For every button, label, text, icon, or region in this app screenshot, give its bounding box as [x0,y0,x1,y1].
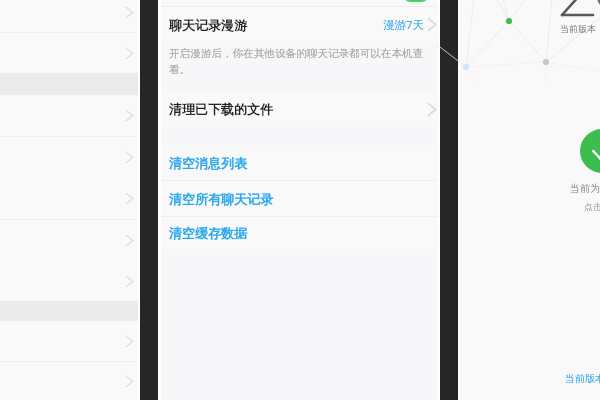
button[interactable]: 清空消息列表 [161,145,438,180]
button[interactable]: 聊天记录漫游 [161,7,438,42]
staticText: 清空消息列表 [169,155,247,171]
staticText: 聊天记录漫游 [169,17,247,33]
button[interactable]: 清理已下载的文件 [161,91,438,127]
staticText: 清空缓存数据 [169,225,247,241]
staticText: 点击检查更新 [584,201,600,212]
button[interactable]: 当前版本号 [565,372,600,385]
staticText: 开启漫游后，你在其他设备的聊天记录都可以在本机查看。 [169,47,436,76]
staticText: 当前为最新版本 [570,182,600,195]
button[interactable]: 清空所有聊天记录 [161,181,438,216]
button[interactable]: 清空缓存数据 [161,217,438,249]
staticText: 漫游7天 [383,17,425,33]
staticText: 清空所有聊天记录 [169,191,273,207]
staticText: 清理已下载的文件 [169,101,273,117]
button[interactable]: Up to date [580,129,600,173]
staticText: 当前版本 [560,23,596,34]
